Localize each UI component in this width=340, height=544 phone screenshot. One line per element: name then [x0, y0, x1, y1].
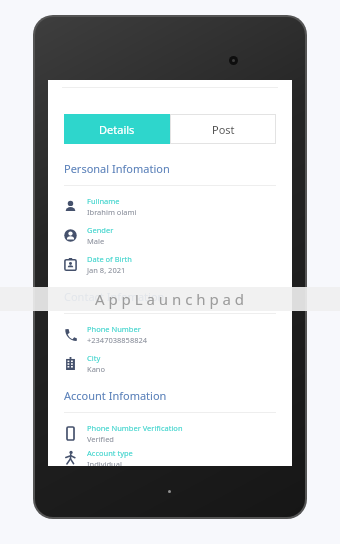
staticText: Personal Infomation — [64, 161, 170, 176]
staticText: Details — [99, 122, 135, 137]
staticText: Kano — [87, 364, 106, 374]
staticText: City — [87, 353, 101, 363]
staticText: Individual — [87, 459, 122, 466]
staticText: Verified — [87, 434, 114, 444]
button[interactable]: City — [64, 349, 276, 378]
staticText: Contact Infomation — [64, 289, 165, 304]
staticText: Jan 8, 2021 — [87, 265, 126, 275]
staticText: Fullname — [87, 196, 120, 206]
staticText: Ibrahim olami — [87, 207, 137, 217]
button[interactable]: Details — [64, 114, 170, 144]
staticText: Phone Number Verification — [87, 423, 183, 433]
button[interactable]: Date of Birth — [64, 250, 276, 279]
button[interactable]: Account type — [64, 448, 276, 466]
staticText: Gender — [87, 225, 114, 235]
button[interactable]: Post — [170, 114, 276, 144]
staticText: Phone Number — [87, 324, 141, 334]
staticText: Male — [87, 236, 105, 246]
button[interactable]: Gender — [64, 221, 276, 250]
staticText: +2347038858824 — [87, 335, 148, 345]
button[interactable]: Phone Number Verification — [64, 419, 276, 448]
button[interactable]: Fullname — [64, 192, 276, 221]
button[interactable]: Phone Number — [64, 320, 276, 349]
staticText: Date of Birth — [87, 254, 132, 264]
staticText: Account type — [87, 448, 133, 458]
staticText: A p p L a u n c h p a d — [95, 289, 245, 309]
staticText: Account Infomation — [64, 388, 167, 403]
other: Front camera — [229, 56, 238, 65]
staticText: Post — [212, 122, 235, 137]
